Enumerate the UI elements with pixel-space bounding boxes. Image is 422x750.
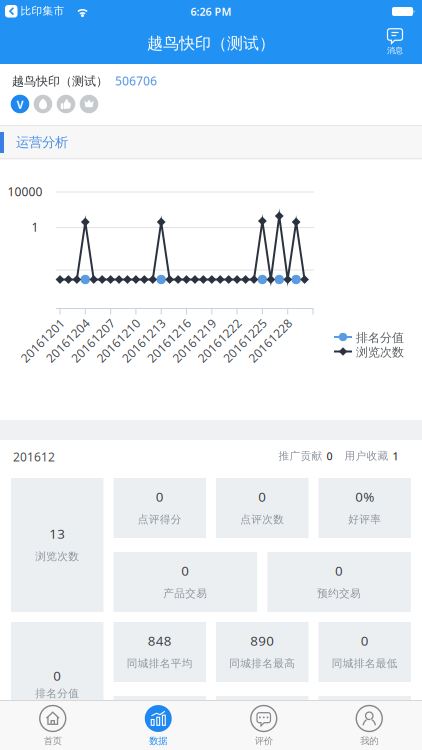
staticText: 推广贡献 (278, 449, 322, 462)
staticText: 10000 (7, 183, 42, 199)
staticText: 同城排名最高 (229, 657, 295, 670)
staticText: 评价 (255, 735, 273, 747)
staticText: 预约交易 (317, 587, 361, 600)
staticText: 首页 (44, 735, 62, 747)
staticText: 点评次数 (240, 513, 284, 526)
staticText: 0 (326, 449, 332, 463)
staticText: 1 (31, 219, 38, 235)
staticText: 运营分析 (16, 134, 68, 150)
staticText: 用户收藏 (344, 449, 388, 462)
staticText: 越鸟快印（测试） (12, 74, 108, 89)
staticText: 浏览次数 (356, 345, 404, 360)
button[interactable]: 0 (113, 478, 206, 538)
button[interactable]: 消息 (377, 23, 413, 60)
staticText: 890 (250, 632, 274, 649)
staticText: 1 (392, 449, 398, 463)
button[interactable]: 0 (267, 552, 411, 612)
staticText: 20161210 (90, 332, 146, 348)
button[interactable]: 0% (318, 478, 411, 538)
staticText: 越鸟快印（测试） (147, 34, 275, 53)
staticText: 同城排名平均 (127, 657, 193, 670)
button[interactable]: 0 (216, 478, 308, 538)
staticText: 20161204 (40, 332, 96, 348)
staticText: 同城排名最低 (332, 657, 398, 670)
staticText: 201612 (13, 449, 55, 465)
staticText: 0% (355, 488, 374, 505)
staticText: 0 (361, 632, 369, 649)
staticText: 848 (148, 632, 172, 649)
button[interactable]: 评价 (211, 700, 316, 750)
staticText: 0 (258, 488, 266, 505)
staticText: 0 (53, 667, 61, 684)
staticText: 排名分值 (35, 687, 79, 700)
staticText: V (16, 97, 23, 112)
button[interactable]: 0 (113, 552, 257, 612)
staticText: 点评得分 (138, 513, 182, 526)
staticText: 20161228 (242, 332, 298, 348)
staticText: 506706 (115, 73, 157, 89)
button[interactable]: 13 (11, 478, 103, 612)
button[interactable]: 506706 (115, 73, 157, 89)
staticText: 20161216 (141, 332, 197, 348)
button[interactable]: 数据 (105, 700, 211, 750)
button[interactable]: 848 (113, 622, 206, 682)
staticText: 好评率 (348, 513, 381, 526)
staticText: 浏览次数 (35, 550, 79, 563)
staticText: 6:26 PM (190, 4, 231, 19)
button[interactable]: 890 (216, 622, 308, 682)
staticText: 20161222 (192, 332, 248, 348)
button[interactable]: 我的 (316, 700, 422, 750)
staticText: 20161201 (14, 332, 70, 348)
staticText: 20161213 (116, 332, 172, 348)
staticText: 20161225 (217, 332, 273, 348)
staticText: 0 (335, 562, 343, 579)
staticText: 13 (49, 525, 65, 542)
button[interactable]: 首页 (0, 700, 105, 750)
staticText: 比印集市 (20, 4, 64, 18)
button[interactable]: 0 (11, 622, 103, 750)
staticText: 0 (156, 488, 164, 505)
staticText: 我的 (360, 735, 378, 747)
staticText: 消息 (387, 46, 403, 55)
staticText: 排名分值 (356, 330, 404, 345)
staticText: 20161207 (65, 332, 121, 348)
staticText: 0 (181, 562, 189, 579)
staticText: 产品交易 (163, 587, 207, 600)
staticText: 数据 (149, 735, 167, 747)
button[interactable]: 0 (318, 622, 411, 682)
staticText: 20161219 (166, 332, 222, 348)
